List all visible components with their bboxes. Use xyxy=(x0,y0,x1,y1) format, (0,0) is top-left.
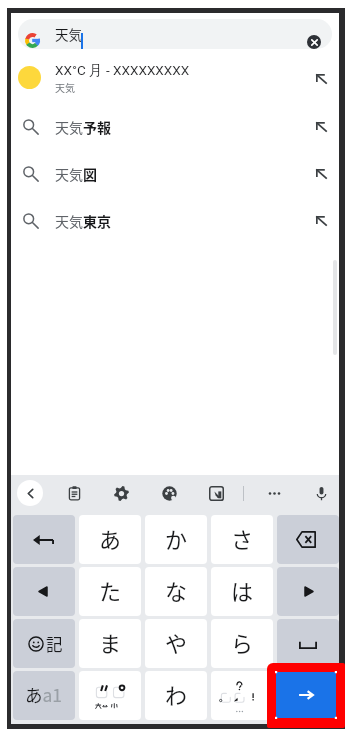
button[interactable]: Clipboard xyxy=(61,480,87,506)
button[interactable]: Insert suggestion xyxy=(303,55,339,102)
button[interactable]: 記 xyxy=(13,619,75,668)
button[interactable] xyxy=(13,515,75,564)
staticText: あ xyxy=(99,522,122,554)
button[interactable]: あ xyxy=(79,515,141,564)
staticText: や xyxy=(165,626,188,658)
button[interactable]: Insert suggestion xyxy=(303,197,339,244)
staticText: 天気 xyxy=(55,80,75,94)
staticText: XX°C 月 - XXXXXXXXX xyxy=(55,62,190,79)
staticText: さ xyxy=(231,522,254,554)
button[interactable]: た xyxy=(79,567,141,616)
staticText: た xyxy=(99,574,122,606)
button[interactable]: 天気予報 xyxy=(11,103,339,150)
button[interactable]: さ xyxy=(211,515,273,564)
button[interactable]: 天気 xyxy=(18,19,332,49)
button[interactable]: あa1 xyxy=(13,671,75,720)
button[interactable] xyxy=(277,619,339,668)
button[interactable]: Back xyxy=(17,480,43,506)
button[interactable]: ま xyxy=(79,619,141,668)
button[interactable]: Enter xyxy=(277,671,339,720)
staticText: 天気 xyxy=(55,24,82,44)
button[interactable]: Stickers xyxy=(203,480,229,506)
button[interactable]: か xyxy=(145,515,207,564)
button[interactable] xyxy=(79,671,141,720)
staticText: あa1 xyxy=(25,682,63,707)
button[interactable] xyxy=(13,567,75,616)
button[interactable]: や xyxy=(145,619,207,668)
button[interactable]: は xyxy=(211,567,273,616)
staticText: 記 xyxy=(46,632,63,656)
button[interactable]: わ xyxy=(145,671,207,720)
staticText: 天気図 xyxy=(55,164,310,184)
staticText: ら xyxy=(231,626,254,658)
button[interactable]: Insert suggestion xyxy=(303,103,339,150)
button[interactable]: Theme xyxy=(156,480,182,506)
button[interactable]: Insert suggestion xyxy=(303,150,339,197)
staticText: か xyxy=(165,522,188,554)
button[interactable]: ら xyxy=(211,619,273,668)
button[interactable] xyxy=(211,671,273,720)
button[interactable]: Clear search xyxy=(307,35,321,49)
staticText: 天気予報 xyxy=(55,117,310,137)
button[interactable]: 天気東京 xyxy=(11,197,339,244)
button[interactable] xyxy=(277,567,339,616)
button[interactable]: Settings xyxy=(108,480,134,506)
button[interactable]: な xyxy=(145,567,207,616)
staticText: ま xyxy=(99,626,122,658)
staticText: な xyxy=(165,574,188,606)
button[interactable]: Enter xyxy=(276,672,336,718)
staticText: 天気東京 xyxy=(55,211,310,231)
button[interactable] xyxy=(277,515,339,564)
staticText: は xyxy=(231,574,254,606)
button[interactable]: Voice input xyxy=(308,480,334,506)
button[interactable]: XX°C 月 - XXXXXXXXX xyxy=(11,55,339,102)
button[interactable]: More options xyxy=(261,480,287,506)
button[interactable]: 天気図 xyxy=(11,150,339,197)
staticText: わ xyxy=(165,678,188,710)
